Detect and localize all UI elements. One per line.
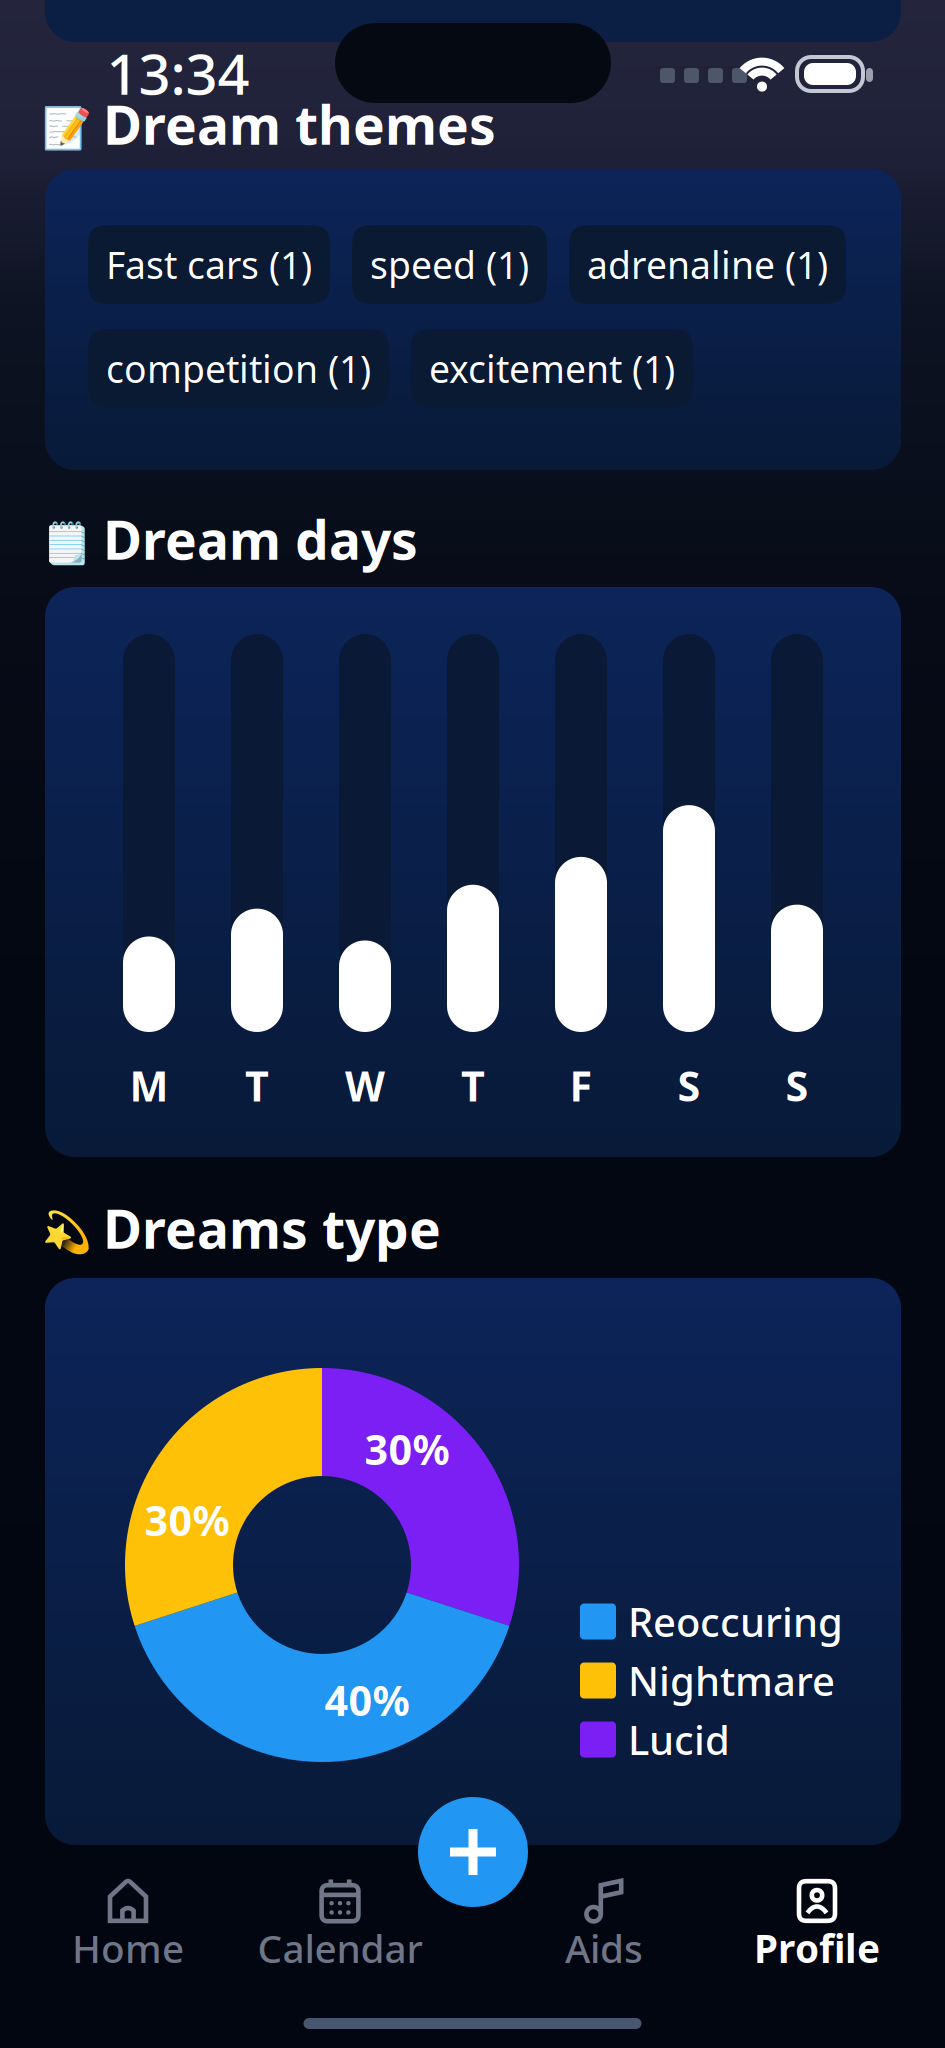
button[interactable]: Fast cars (1) — [88, 225, 330, 304]
staticText: F — [569, 1058, 592, 1113]
staticText: S — [677, 1058, 700, 1113]
staticText: Aids — [565, 1922, 643, 1974]
staticText: 🗒️ — [42, 520, 92, 566]
button[interactable]: Profile — [717, 1879, 917, 1969]
staticText: Home — [72, 1922, 184, 1974]
staticText: Calendar — [257, 1922, 422, 1974]
staticText: Dreams type — [103, 1193, 441, 1263]
staticText: Reoccuring — [628, 1595, 843, 1648]
staticText: 13:34 — [106, 36, 249, 110]
staticText: M — [129, 1058, 168, 1113]
staticText: excitement (1) — [429, 344, 675, 393]
button[interactable]: excitement (1) — [411, 329, 693, 408]
staticText: speed (1) — [370, 240, 529, 289]
button[interactable]: speed (1) — [352, 225, 547, 304]
staticText: Nightmare — [628, 1654, 835, 1707]
button[interactable]: adrenaline (1) — [569, 225, 846, 304]
staticText: 💫 — [42, 1209, 92, 1255]
staticText: adrenaline (1) — [587, 240, 828, 289]
staticText: Dream themes — [103, 89, 496, 159]
button[interactable]: Home — [28, 1879, 228, 1969]
staticText: T — [245, 1058, 269, 1113]
button[interactable]: Calendar — [240, 1879, 440, 1969]
staticText: T — [461, 1058, 485, 1113]
staticText: Profile — [754, 1922, 880, 1974]
staticText: 30% — [144, 1493, 229, 1547]
staticText: Dream days — [103, 504, 418, 574]
staticText: S — [785, 1058, 808, 1113]
staticText: Lucid — [628, 1713, 730, 1766]
staticText: W — [345, 1058, 385, 1113]
staticText: Fast cars (1) — [106, 240, 312, 289]
button[interactable]: Add dream — [418, 1797, 528, 1907]
staticText: 30% — [364, 1422, 449, 1476]
staticText: 40% — [324, 1673, 409, 1727]
button[interactable]: competition (1) — [88, 329, 389, 408]
button[interactable]: Aids — [504, 1879, 704, 1969]
staticText: 📝 — [42, 105, 92, 151]
staticText: competition (1) — [106, 344, 371, 393]
